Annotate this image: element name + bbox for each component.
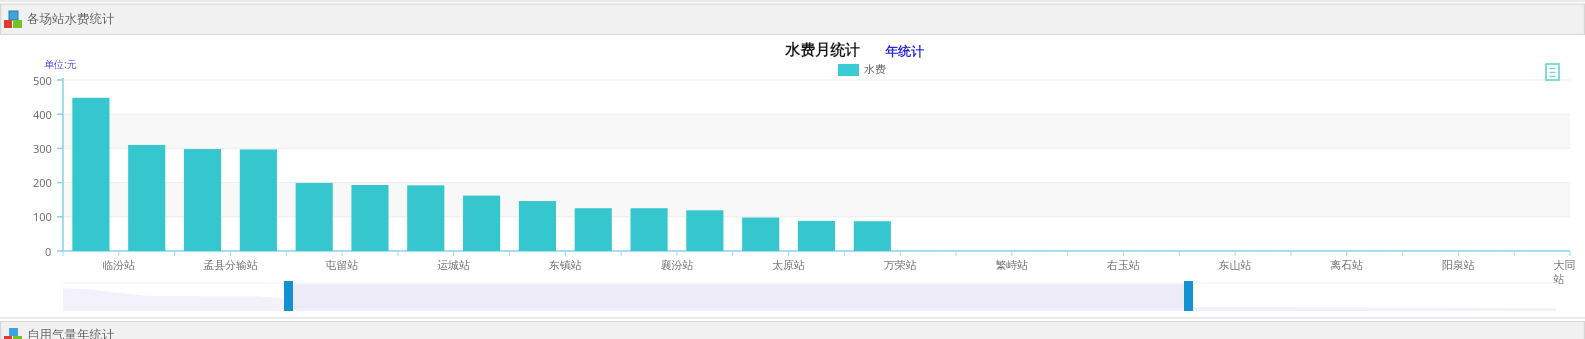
button[interactable]: 各场站水费统计 面板标题 xyxy=(0,4,1585,35)
button[interactable]: 右侧缩放手柄 xyxy=(1180,280,1198,314)
button[interactable]: 数据视图 xyxy=(1540,60,1566,86)
button[interactable]: 年统计 xyxy=(880,40,935,60)
button[interactable]: 自用气量年统计 面板标题 xyxy=(0,322,1585,339)
button[interactable]: 水费 图例 xyxy=(834,60,894,80)
button[interactable]: 左侧缩放手柄 xyxy=(280,280,298,314)
